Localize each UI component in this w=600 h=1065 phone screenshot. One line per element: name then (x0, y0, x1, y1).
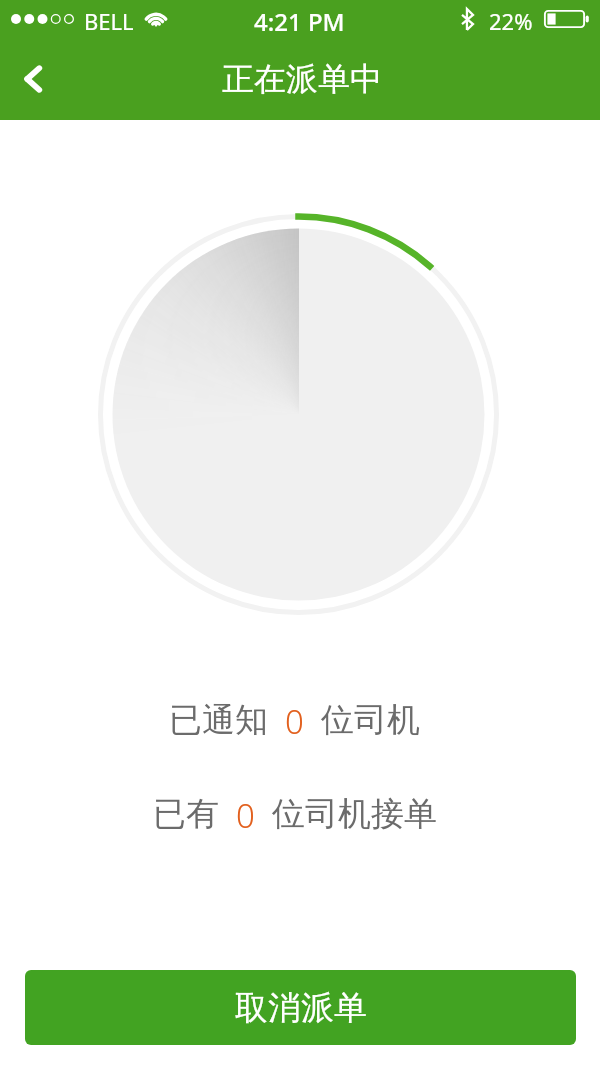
staticText: 4:21 PM (254, 5, 345, 38)
button[interactable]: Back (0, 45, 64, 120)
staticText: 22% (489, 6, 533, 36)
staticText: 取消派单 (235, 987, 367, 1029)
staticText: 0 (285, 699, 304, 744)
staticText: 正在派单中 (222, 59, 382, 99)
staticText: 已通知 (169, 699, 268, 741)
staticText: BELL (84, 6, 134, 36)
staticText: 0 (236, 793, 255, 838)
staticText: 位司机 (321, 699, 420, 741)
staticText: 已有 (153, 793, 219, 835)
button[interactable]: 取消派单 (25, 970, 576, 1045)
staticText: 位司机接单 (272, 793, 437, 835)
